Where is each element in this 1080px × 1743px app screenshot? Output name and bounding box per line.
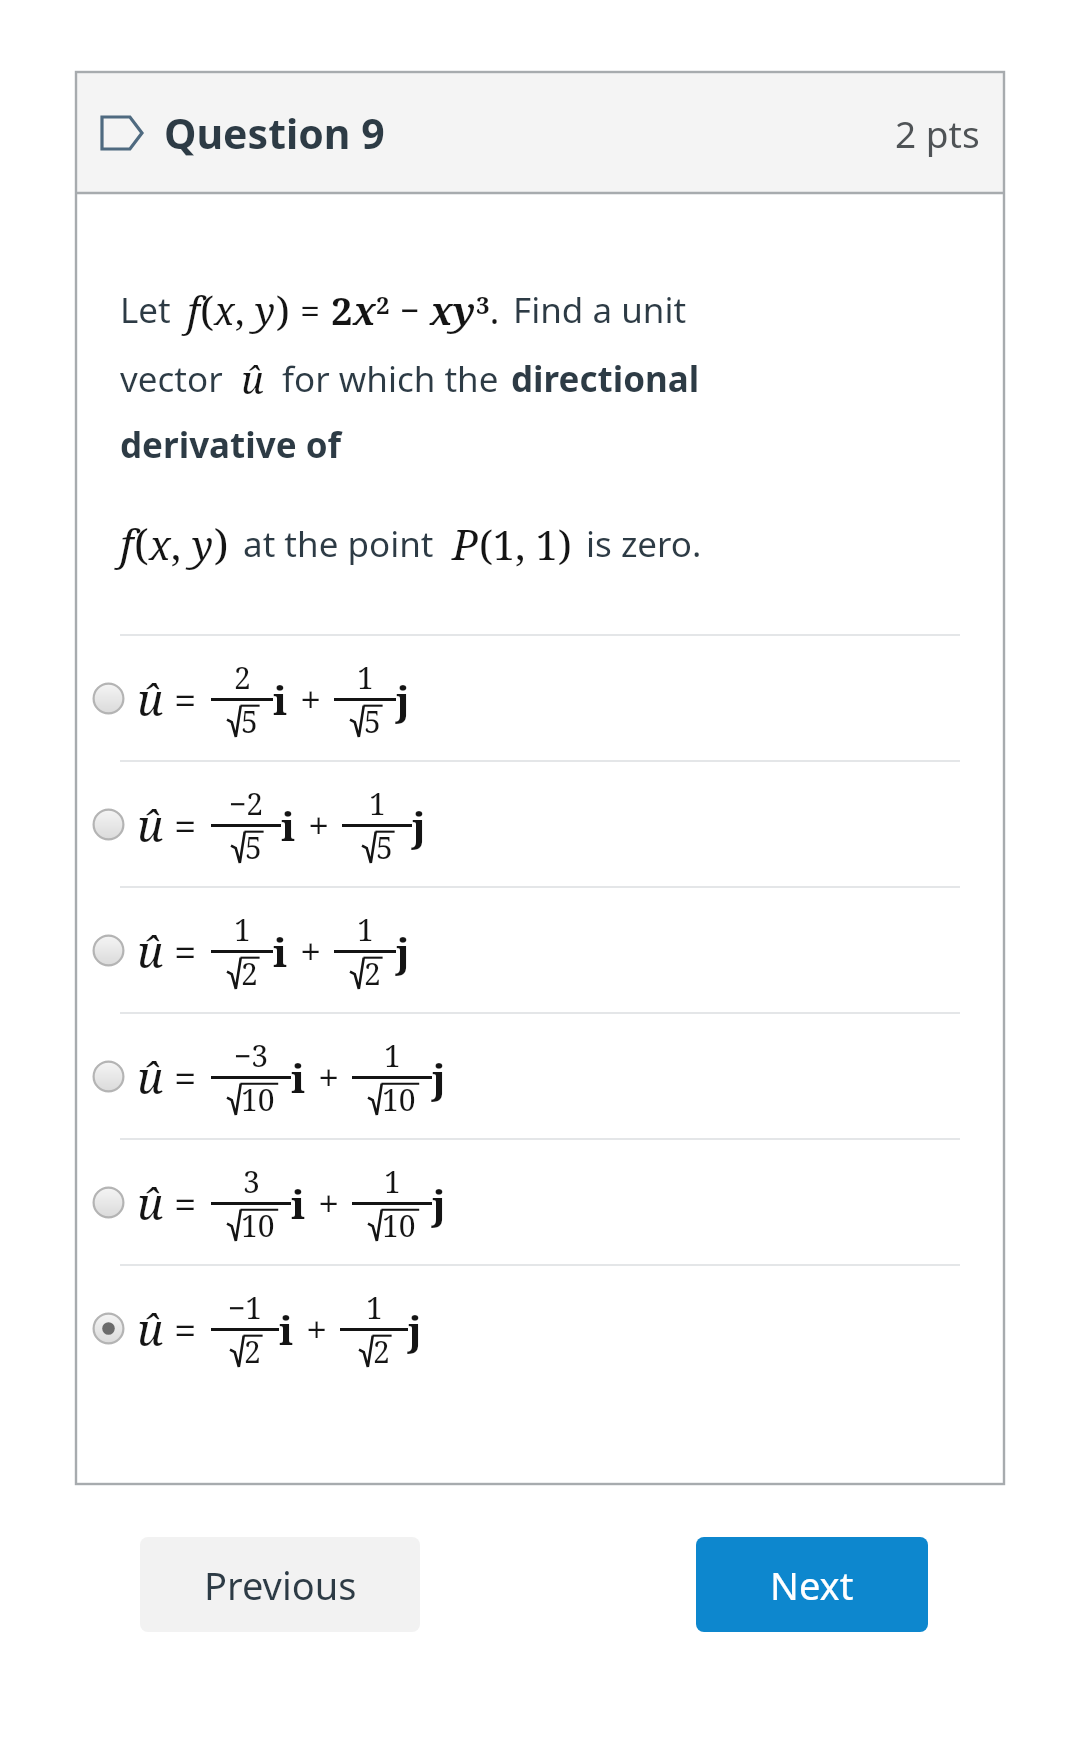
staticText: Let bbox=[120, 286, 171, 334]
staticText: i bbox=[291, 1050, 306, 1104]
staticText: directional bbox=[511, 355, 700, 403]
staticText: y bbox=[255, 284, 276, 336]
staticText: 10 bbox=[382, 1205, 416, 1244]
staticText: ( bbox=[134, 515, 149, 572]
staticText: û bbox=[137, 1047, 164, 1107]
staticText: 1 bbox=[384, 1035, 401, 1076]
staticText: + bbox=[318, 1051, 340, 1103]
staticText: = bbox=[300, 286, 321, 335]
staticText: ) bbox=[214, 515, 229, 572]
staticText: , bbox=[171, 517, 192, 571]
staticText: i bbox=[279, 1302, 294, 1356]
button[interactable]: û bbox=[76, 762, 1004, 886]
staticText: 1 bbox=[366, 1287, 383, 1328]
staticText: at the point bbox=[243, 520, 434, 568]
staticText: 3 bbox=[476, 288, 490, 321]
staticText: 1 bbox=[384, 1161, 401, 1202]
staticText: j bbox=[432, 1050, 446, 1104]
button[interactable]: Previous bbox=[140, 1537, 420, 1632]
staticText: i bbox=[273, 924, 288, 978]
staticText: x bbox=[149, 517, 171, 571]
button[interactable]: û bbox=[76, 1140, 1004, 1264]
staticText: Question 9 bbox=[164, 105, 385, 161]
staticText: = bbox=[174, 672, 197, 726]
staticText: (1, 1) bbox=[479, 517, 572, 571]
staticText: + bbox=[300, 673, 322, 725]
staticText: derivative of bbox=[120, 421, 342, 469]
staticText: = bbox=[174, 1176, 197, 1230]
staticText: + bbox=[308, 799, 330, 851]
staticText: 2 bbox=[331, 284, 353, 336]
staticText: û bbox=[137, 921, 164, 981]
staticText: 1 bbox=[357, 909, 374, 950]
staticText: û bbox=[137, 1173, 164, 1233]
staticText: j bbox=[432, 1176, 446, 1230]
staticText: ) bbox=[276, 283, 290, 337]
button[interactable]: û bbox=[76, 636, 1004, 760]
staticText: −2 bbox=[229, 783, 264, 824]
button[interactable]: û bbox=[76, 1266, 1004, 1390]
button[interactable]: Next bbox=[696, 1537, 928, 1632]
staticText: 2 bbox=[373, 1331, 390, 1370]
staticText: 10 bbox=[241, 1079, 275, 1118]
staticText: 10 bbox=[241, 1205, 275, 1244]
staticText: 2 bbox=[244, 1331, 261, 1370]
staticText: j bbox=[396, 672, 410, 726]
staticText: y bbox=[453, 284, 476, 336]
staticText: ( bbox=[200, 283, 214, 337]
staticText: j bbox=[408, 1302, 422, 1356]
staticText: Find a unit bbox=[513, 286, 687, 334]
staticText: , bbox=[235, 284, 255, 336]
staticText: 5 bbox=[241, 701, 258, 740]
staticText: 3 bbox=[243, 1161, 260, 1202]
staticText: f bbox=[120, 515, 134, 572]
staticText: x bbox=[214, 284, 235, 336]
staticText: 2 bbox=[376, 288, 390, 321]
staticText: 2 bbox=[241, 953, 258, 992]
staticText: j bbox=[412, 798, 426, 852]
staticText: 2 bbox=[364, 953, 381, 992]
staticText: 5 bbox=[245, 827, 262, 866]
staticText: i bbox=[273, 672, 288, 726]
staticText: + bbox=[318, 1177, 340, 1229]
staticText: û bbox=[241, 353, 264, 405]
staticText: 1 bbox=[369, 783, 386, 824]
staticText: û bbox=[137, 669, 164, 729]
staticText: 2 bbox=[234, 657, 251, 698]
staticText: û bbox=[137, 795, 164, 855]
staticText: x bbox=[353, 284, 376, 336]
other: Flag question bbox=[100, 113, 144, 153]
staticText: + bbox=[300, 925, 322, 977]
staticText: Previous bbox=[204, 1559, 357, 1611]
staticText: = bbox=[174, 1302, 197, 1356]
staticText: 10 bbox=[382, 1079, 416, 1118]
staticText: 2 pts bbox=[895, 108, 980, 158]
staticText: − bbox=[400, 287, 420, 333]
staticText: 1 bbox=[357, 657, 374, 698]
staticText: û bbox=[137, 1299, 164, 1359]
staticText: 5 bbox=[364, 701, 381, 740]
staticText: is zero. bbox=[586, 520, 702, 568]
staticText: = bbox=[174, 924, 197, 978]
staticText: = bbox=[174, 798, 197, 852]
staticText: . bbox=[490, 286, 499, 335]
staticText: i bbox=[281, 798, 296, 852]
staticText: for which the bbox=[282, 355, 499, 403]
staticText: j bbox=[396, 924, 410, 978]
button[interactable]: û bbox=[76, 1014, 1004, 1138]
staticText: 5 bbox=[376, 827, 393, 866]
staticText: f bbox=[187, 283, 200, 337]
staticText: + bbox=[306, 1303, 328, 1355]
staticText: P bbox=[452, 515, 479, 572]
staticText: y bbox=[192, 517, 214, 571]
staticText: −3 bbox=[234, 1035, 269, 1076]
staticText: = bbox=[174, 1050, 197, 1104]
staticText: x bbox=[430, 284, 453, 336]
button[interactable]: û bbox=[76, 888, 1004, 1012]
staticText: −1 bbox=[228, 1287, 263, 1328]
staticText: 1 bbox=[234, 909, 251, 950]
staticText: Next bbox=[770, 1559, 854, 1611]
staticText: vector bbox=[120, 355, 223, 403]
staticText: i bbox=[291, 1176, 306, 1230]
